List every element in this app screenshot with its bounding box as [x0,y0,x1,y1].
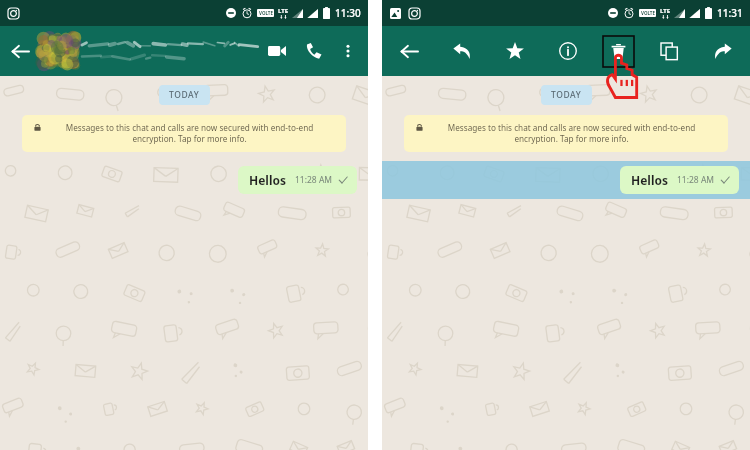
button[interactable]: Delete [603,36,634,67]
button[interactable]: Back [0,31,40,71]
staticText: 11:30 [335,6,361,20]
button[interactable]: Star [496,32,534,70]
staticText: Hellos [249,172,287,188]
button[interactable]: Messages to this chat and calls are now … [404,115,728,152]
button[interactable]: Video call [258,32,296,70]
button[interactable]: More options [332,35,364,67]
button[interactable]: Back [390,32,428,70]
staticText: Messages to this chat and calls are now … [427,122,716,145]
button[interactable]: Copy [650,32,688,70]
button[interactable]: Info [549,32,587,70]
staticText: Hellos [631,172,669,188]
staticText: 11:31 [717,6,743,20]
button[interactable]: Hellos [0,161,368,199]
button[interactable]: Forward [704,32,742,70]
staticText: LTE [660,7,671,15]
staticText: TODAY [169,89,200,101]
button[interactable]: TODAY [159,85,210,105]
staticText: VOLTE [259,10,273,16]
button[interactable]: Messages to this chat and calls are now … [22,115,346,152]
button[interactable]: Voice call [296,33,332,69]
staticText: 11:28 AM [295,174,333,186]
staticText: LTE [278,7,289,15]
staticText: TODAY [551,89,582,101]
button[interactable]: TODAY [541,85,592,105]
staticText: VOLTE [641,10,655,16]
button[interactable]: Reply [443,32,481,70]
staticText: Messages to this chat and calls are now … [45,122,334,145]
button[interactable]: Hellos [382,161,750,199]
staticText: 11:28 AM [677,174,715,186]
